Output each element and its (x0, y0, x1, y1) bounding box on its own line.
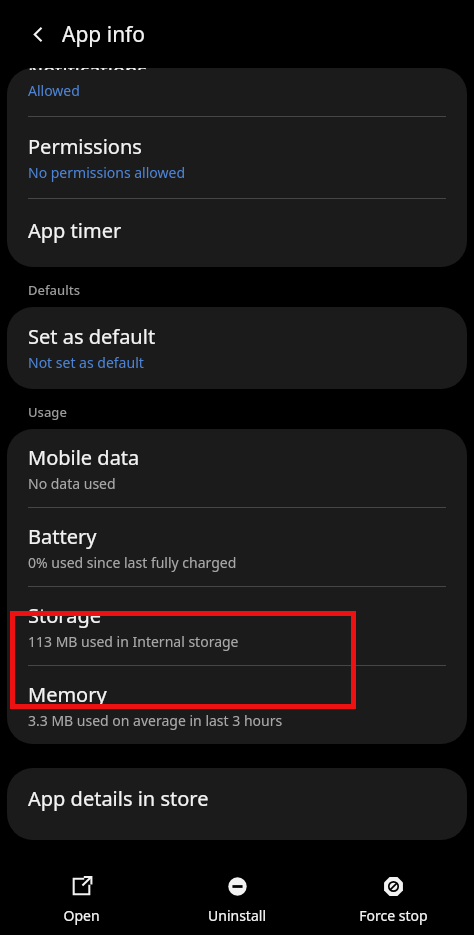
staticText: Memory (28, 681, 107, 708)
staticText: Permissions (28, 133, 142, 160)
button[interactable]: Notifications (7, 68, 467, 116)
button[interactable]: Uninstall (162, 866, 312, 925)
staticText: No data used (28, 474, 116, 493)
button[interactable]: App details in store (7, 768, 467, 840)
staticText: Notifications (28, 68, 147, 70)
staticText: Battery (28, 523, 97, 550)
staticText: Open (63, 906, 100, 925)
staticText: Storage (28, 602, 101, 629)
staticText: No permissions allowed (28, 163, 186, 182)
staticText: Set as default (28, 323, 156, 350)
button[interactable]: Force stop (318, 866, 468, 925)
button[interactable]: Permissions (7, 117, 467, 198)
staticText: Defaults (28, 281, 81, 299)
staticText: Force stop (359, 906, 428, 925)
button[interactable]: Mobile data (7, 429, 467, 507)
button[interactable]: Storage (7, 587, 467, 665)
staticText: 113 MB used in Internal storage (28, 632, 239, 651)
staticText: 3.3 MB used on average in last 3 hours (28, 711, 283, 730)
button[interactable]: Back (16, 12, 60, 56)
staticText: Allowed (28, 81, 80, 100)
staticText: Usage (28, 403, 67, 421)
staticText: 0% used since last fully charged (28, 553, 237, 572)
staticText: App timer (28, 217, 122, 244)
button[interactable]: Battery (7, 508, 467, 586)
staticText: Not set as default (28, 353, 144, 372)
button[interactable]: Open (6, 866, 156, 925)
staticText: App info (62, 20, 146, 49)
staticText: App details in store (28, 785, 209, 812)
button[interactable]: Set as default (7, 307, 467, 389)
button[interactable]: Memory (7, 666, 467, 744)
button[interactable]: App timer (7, 199, 467, 267)
staticText: Uninstall (208, 906, 266, 925)
staticText: Mobile data (28, 444, 140, 471)
